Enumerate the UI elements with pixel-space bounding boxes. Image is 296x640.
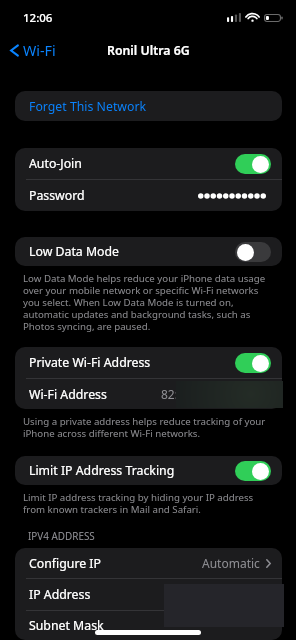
staticText: 82:1A:4C:9E:33:D1A: [161, 386, 271, 402]
button[interactable]: Wi-Fi Address: [15, 379, 282, 409]
button[interactable]: Back to Wi-Fi: [0, 38, 64, 63]
staticText: Subnet Mask: [29, 617, 104, 634]
button[interactable]: Low Data Mode toggle: [235, 242, 271, 262]
staticText: Ronil Ultra 6G: [107, 42, 190, 59]
button[interactable]: Auto-Join: [15, 148, 282, 179]
staticText: IP Address: [29, 586, 91, 603]
staticText: Wi-Fi Address: [29, 386, 107, 403]
button[interactable]: Password: [15, 180, 282, 211]
staticText: Wi-Fi: [23, 41, 56, 60]
staticText: Low Data Mode: [29, 243, 120, 260]
button[interactable]: Limit IP Address Tracking: [15, 456, 282, 485]
staticText: Limit IP address tracking by hiding your…: [23, 491, 270, 516]
staticText: Configure IP: [29, 555, 101, 572]
staticText: 12:06: [23, 10, 53, 26]
button[interactable]: Auto-Join toggle: [235, 154, 271, 174]
staticText: Limit IP Address Tracking: [29, 462, 175, 479]
button[interactable]: IP Address: [15, 579, 282, 610]
button[interactable]: Forget This Network: [15, 91, 282, 121]
staticText: Password: [29, 187, 85, 204]
button[interactable]: Private Wi-Fi Address toggle: [235, 353, 271, 373]
button[interactable]: Limit IP Address Tracking toggle: [235, 461, 271, 481]
button[interactable]: Subnet Mask: [15, 611, 282, 640]
staticText: Low Data Mode helps reduce your iPhone d…: [23, 272, 270, 333]
staticText: IPV4 ADDRESS: [28, 529, 95, 542]
staticText: Auto-Join: [29, 155, 82, 172]
button[interactable]: Configure IP: [15, 548, 282, 578]
staticText: Private Wi-Fi Address: [29, 354, 151, 371]
staticText: Using a private address helps reduce tra…: [23, 415, 270, 440]
staticText: Automatic: [202, 555, 260, 571]
button[interactable]: Private Wi-Fi Address: [15, 347, 282, 378]
button[interactable]: Low Data Mode: [15, 237, 282, 266]
staticText: Forget This Network: [29, 98, 147, 115]
